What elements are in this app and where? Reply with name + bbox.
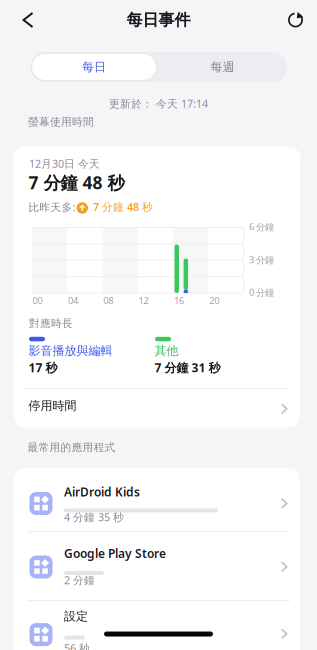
staticText: 其他 [154, 343, 178, 358]
staticText: 7 分鐘 31 秒 [154, 360, 220, 375]
button[interactable]: Google Play Store [14, 531, 300, 598]
staticText: 每日事件 [126, 10, 190, 30]
staticText: 0 分鐘 [249, 286, 274, 298]
staticText: 每週 [210, 60, 234, 74]
staticText: 最常用的應用程式 [27, 441, 115, 454]
staticText: 2 分鐘 [64, 573, 95, 587]
button[interactable]: Back [10, 4, 46, 36]
staticText: 20 [209, 294, 219, 307]
staticText: 設定 [64, 609, 88, 624]
staticText: Google Play Store [64, 545, 166, 561]
staticText: 影音播放與編輯 [28, 343, 112, 358]
staticText: 12 [138, 294, 148, 307]
staticText: 每日 [82, 60, 106, 74]
staticText: 更新於： 今天 17:14 [109, 96, 208, 111]
staticText: 停用時間 [28, 398, 76, 413]
button[interactable]: 每日 [30, 52, 158, 82]
staticText: 12月30日 今天 [29, 156, 100, 171]
button[interactable]: AirDroid Kids [14, 468, 300, 531]
staticText: 7 分鐘 48 秒 [93, 200, 153, 214]
staticText: 螢幕使用時間 [28, 115, 94, 129]
staticText: 比昨天多: [28, 200, 75, 214]
staticText: 00 [32, 294, 42, 307]
staticText: 7 分鐘 48 秒 [28, 171, 124, 194]
staticText: 08 [103, 294, 113, 307]
button[interactable]: 每週 [158, 52, 287, 82]
button[interactable]: Refresh [277, 4, 313, 36]
staticText: AirDroid Kids [64, 484, 140, 500]
staticText: 16 [174, 294, 184, 307]
staticText: 6 分鐘 [249, 220, 274, 233]
staticText: 04 [68, 294, 78, 307]
staticText: 3 分鐘 [249, 253, 274, 266]
staticText: 56 秒 [64, 641, 90, 650]
staticText: 4 分鐘 35 秒 [64, 510, 124, 524]
staticText: 17 秒 [28, 360, 57, 375]
button[interactable]: 設定 [14, 600, 300, 650]
staticText: 對應時長 [29, 317, 73, 330]
button[interactable]: 停用時間 [14, 389, 300, 427]
